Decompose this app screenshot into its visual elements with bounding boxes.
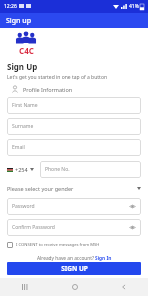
staticText: Sign up: [6, 16, 32, 26]
button[interactable]: Password: [7, 198, 141, 215]
staticText: Profile Information: [23, 86, 73, 93]
staticText: Phone No.: [45, 166, 70, 173]
button[interactable]: Please select your gender: [7, 183, 141, 194]
staticText: Surname: [12, 123, 34, 130]
button[interactable]: SIGN UP: [7, 262, 141, 275]
button[interactable]: Sign In: [95, 255, 112, 262]
button[interactable]: Surname: [7, 118, 141, 135]
staticText: +254: [15, 166, 28, 173]
button[interactable]: Email: [7, 139, 141, 156]
button[interactable]: Phone No.: [40, 161, 141, 178]
button[interactable]: Profile Information: [11, 85, 73, 93]
button[interactable]: Recent apps: [0, 278, 50, 296]
button[interactable]: Back: [99, 278, 148, 296]
button[interactable]: First Name: [7, 97, 141, 114]
staticText: 12:26: [4, 3, 17, 10]
staticText: Let's get you started in one tap of a bu…: [7, 74, 107, 81]
staticText: Please select your gender: [7, 185, 74, 192]
staticText: 41%: [129, 3, 139, 10]
staticText: C4C: [19, 45, 34, 56]
button[interactable]: Confirm Password: [7, 219, 141, 236]
staticText: SIGN UP: [61, 264, 88, 273]
staticText: Email: [12, 144, 25, 151]
staticText: Password: [12, 203, 35, 210]
button[interactable]: +254: [7, 164, 34, 175]
button[interactable]: I CONSENT to receive messages from MSH: [7, 241, 100, 249]
staticText: Already have an account?: [37, 255, 95, 262]
staticText: Sign In: [95, 255, 112, 262]
staticText: Sign Up: [7, 61, 38, 72]
button[interactable]: Home: [50, 278, 99, 296]
staticText: I CONSENT to receive messages from MSH: [16, 242, 100, 248]
staticText: Confirm Password: [12, 224, 55, 231]
staticText: First Name: [12, 102, 38, 109]
